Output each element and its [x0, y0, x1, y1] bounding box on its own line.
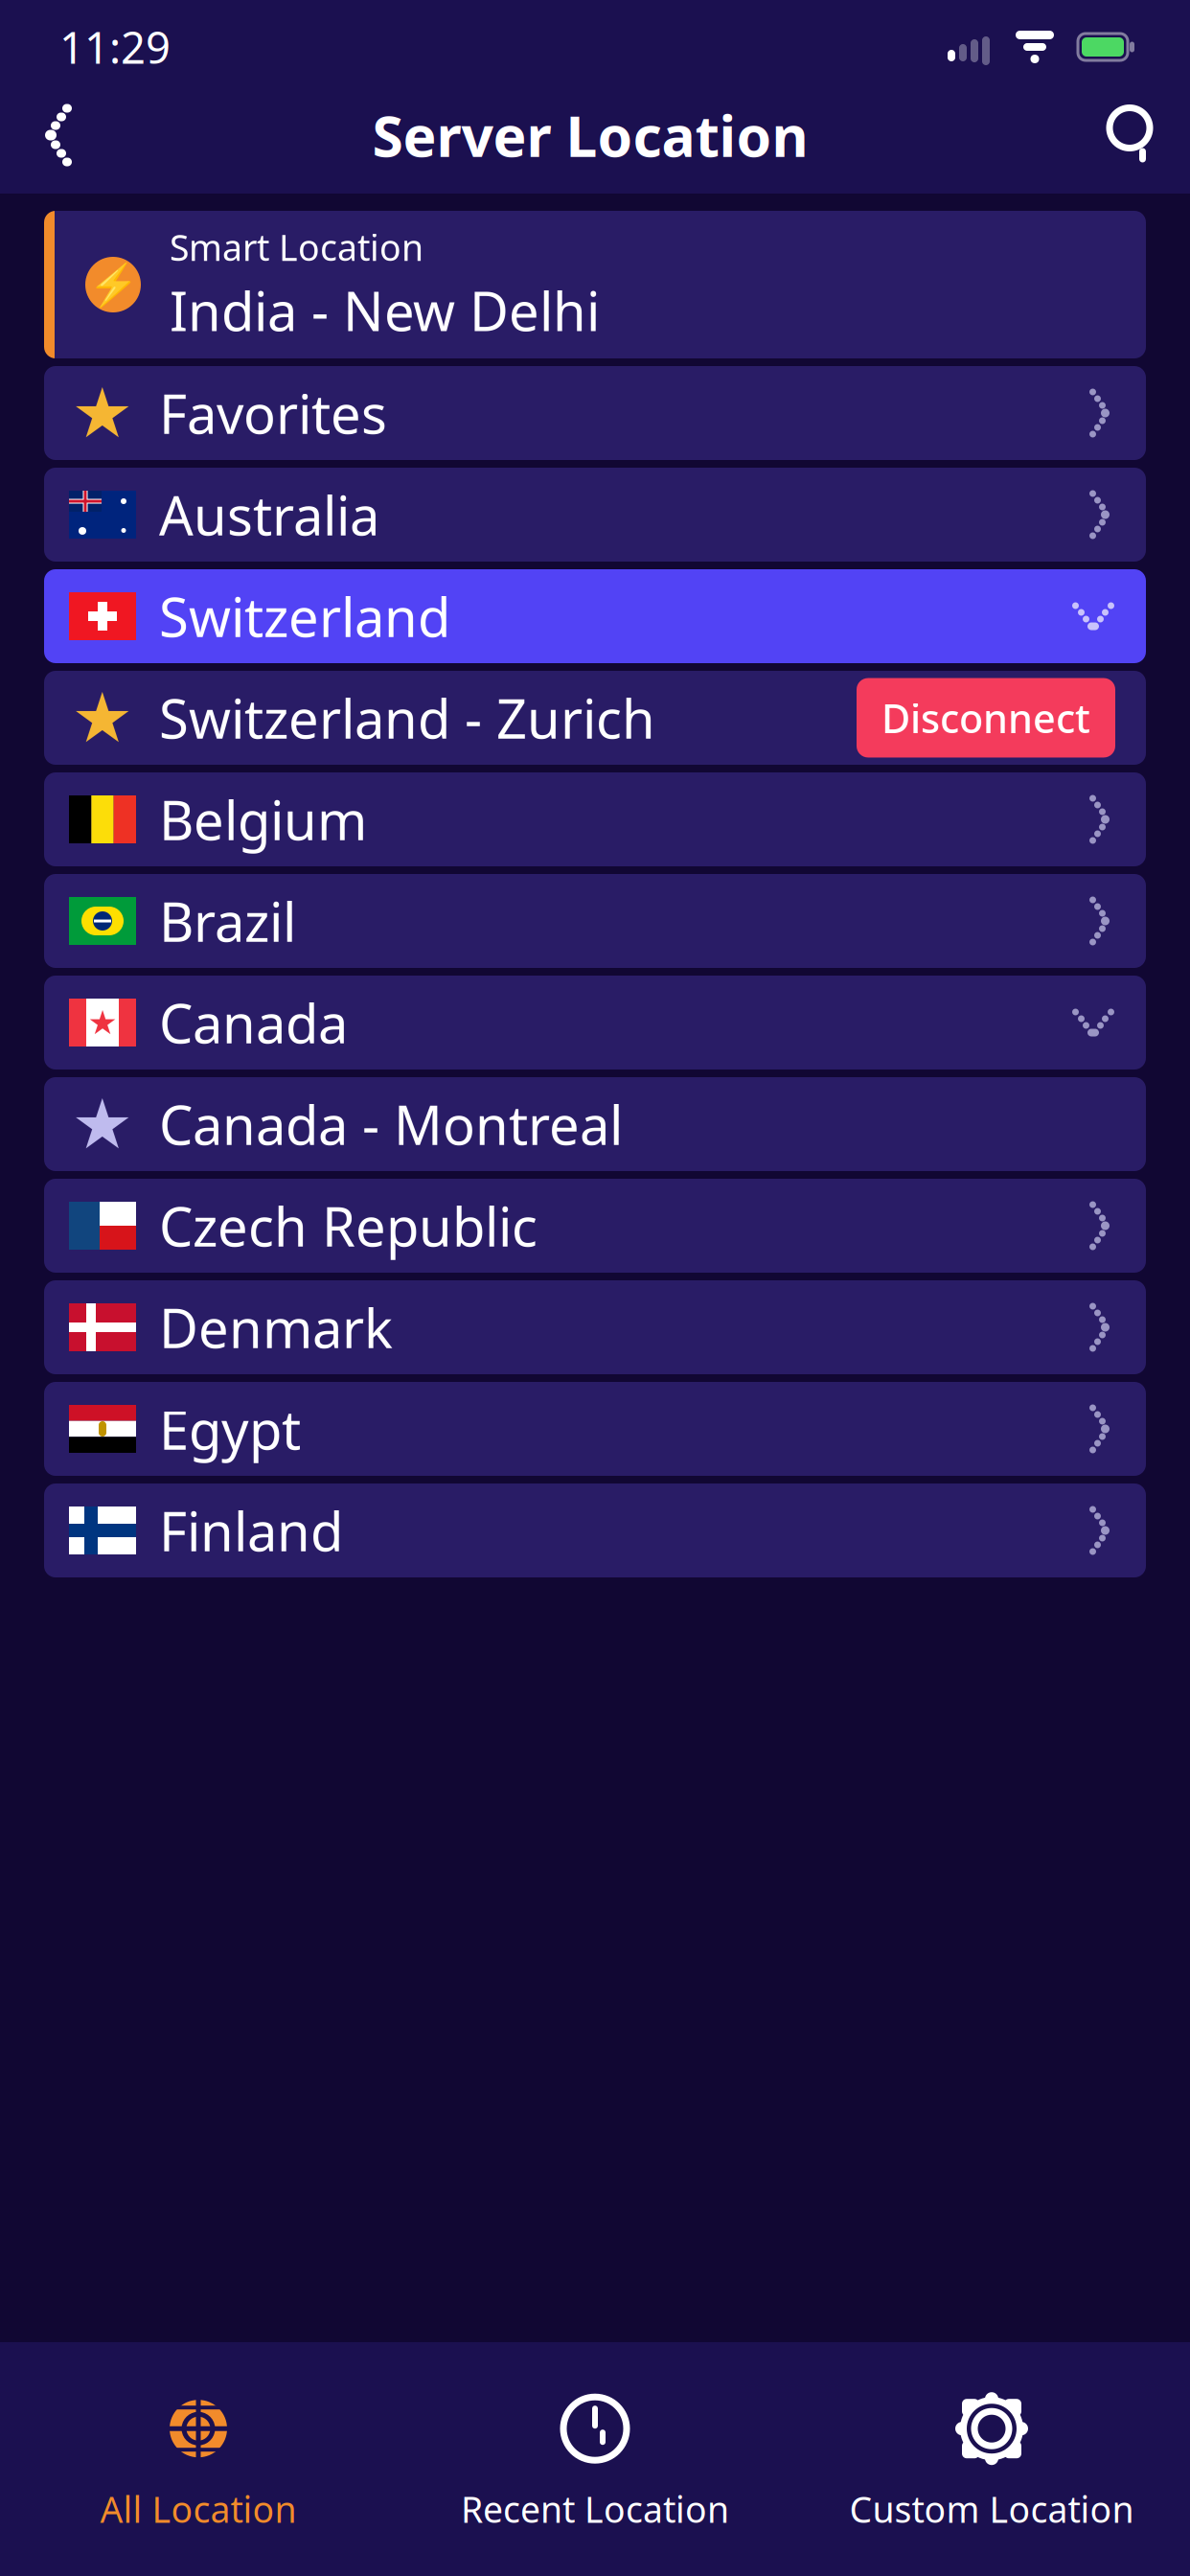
staticText: All Location	[100, 2485, 297, 2533]
button[interactable]: All Location	[0, 2361, 397, 2558]
staticText: Recent Location	[461, 2485, 729, 2533]
staticText: Denmark	[159, 1292, 393, 1363]
staticText: Canada	[159, 987, 348, 1058]
button[interactable]: Custom Location	[793, 2361, 1190, 2558]
staticText: Custom Location	[849, 2485, 1134, 2533]
staticText: Egypt	[159, 1393, 301, 1465]
staticText: ★	[71, 679, 134, 757]
staticText: Finland	[159, 1495, 343, 1566]
staticText: ★	[88, 1004, 117, 1041]
staticText: Favorites	[159, 377, 387, 449]
staticText: India - New Delhi	[170, 275, 600, 346]
button[interactable]: Back	[0, 81, 98, 189]
staticText: Australia	[159, 479, 379, 550]
staticText: ★	[71, 374, 134, 452]
button[interactable]: Search	[1083, 90, 1190, 180]
button[interactable]: Finland	[44, 1483, 1146, 1577]
staticText: Czech Republic	[159, 1190, 538, 1261]
staticText: Brazil	[159, 885, 296, 957]
button[interactable]: Brazil	[44, 874, 1146, 968]
staticText: Switzerland	[159, 581, 450, 652]
button[interactable]: ⚡	[44, 211, 1146, 358]
staticText: Canada - Montreal	[159, 1088, 623, 1160]
button[interactable]: ★	[44, 671, 1146, 765]
staticText: ⚡	[88, 261, 138, 308]
staticText: 11:29	[59, 18, 171, 76]
button[interactable]: Recent Location	[397, 2361, 793, 2558]
staticText: ★	[71, 1085, 134, 1163]
staticText: Server Location	[372, 98, 808, 172]
staticText: Switzerland - Zurich	[159, 682, 655, 753]
button[interactable]: Australia	[44, 468, 1146, 562]
staticText: Smart Location	[170, 223, 423, 271]
staticText: Belgium	[159, 784, 367, 855]
button[interactable]: ★	[44, 976, 1146, 1069]
button[interactable]: ★	[44, 1077, 1146, 1171]
staticText: Disconnect	[881, 692, 1090, 744]
button[interactable]: Egypt	[44, 1382, 1146, 1476]
button[interactable]: Switzerland	[44, 569, 1146, 663]
button[interactable]: Denmark	[44, 1280, 1146, 1374]
button[interactable]: ★	[44, 366, 1146, 460]
button[interactable]: Czech Republic	[44, 1179, 1146, 1273]
button[interactable]: Belgium	[44, 772, 1146, 866]
